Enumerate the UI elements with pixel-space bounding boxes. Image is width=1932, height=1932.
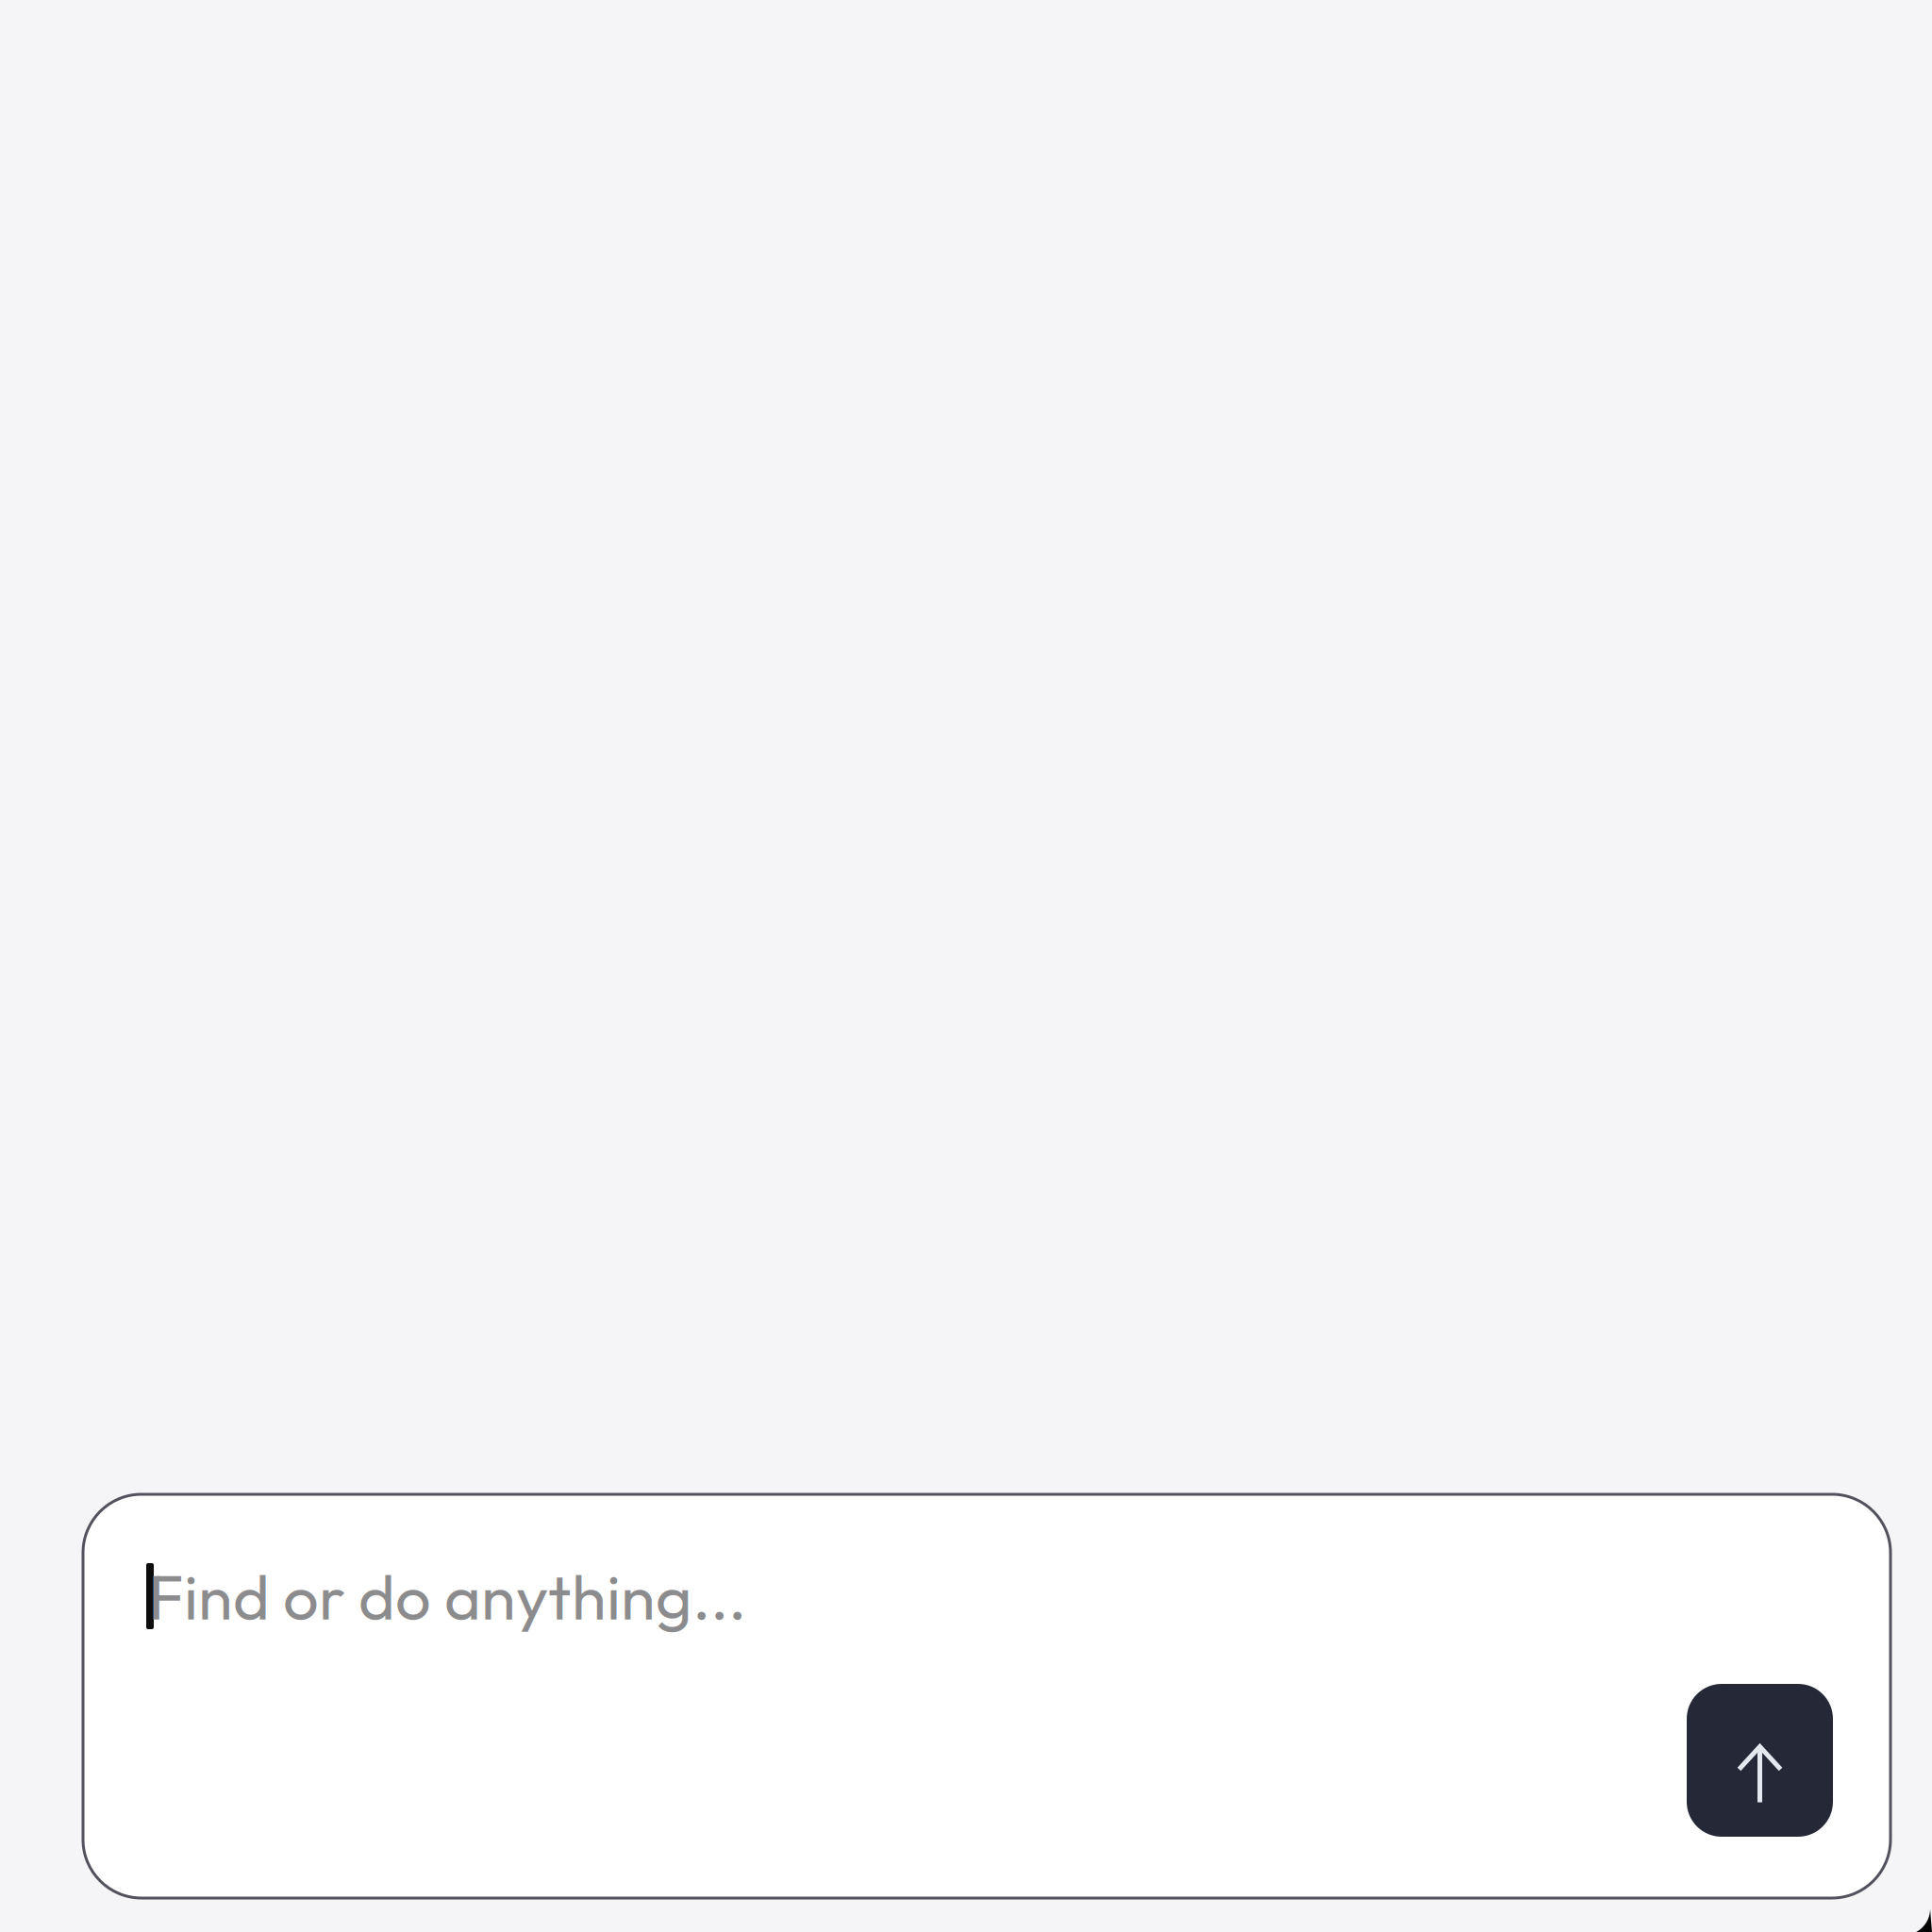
- button[interactable]: Find or do anything...: [83, 1494, 1890, 1629]
- button[interactable]: Send: [1687, 1684, 1833, 1837]
- staticText: Find or do anything...: [148, 1557, 746, 1636]
